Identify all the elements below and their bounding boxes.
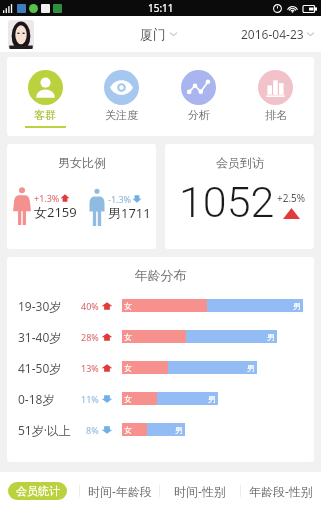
staticText: 女 [124,363,132,373]
button[interactable]: 时间-年龄段 [80,472,159,509]
button[interactable]: 分析 [160,57,237,136]
staticText: 15:11 [148,1,174,15]
staticText: 女 [124,425,132,435]
staticText: 关注度 [105,108,138,122]
staticText: 厦门 [140,26,166,42]
button[interactable]: 年龄段-性别 [241,472,321,509]
staticText: 男 [247,363,255,373]
button[interactable]: 会员统计 [0,472,79,509]
staticText: 11% [81,393,99,405]
button[interactable]: 时间-性别 [160,472,240,509]
staticText: 会员统计 [16,484,60,498]
staticText: 男1711 [108,204,151,222]
button[interactable]: 排名 [237,57,314,136]
staticText: 13% [81,362,99,374]
staticText: 排名 [265,108,287,122]
staticText: 女 [124,301,132,311]
staticText: 28% [81,331,99,343]
button[interactable]: 41-50岁 [7,352,314,383]
staticText: 31-40岁 [18,329,62,345]
staticText: 男女比例 [58,155,106,170]
staticText: 1052 [179,177,275,227]
staticText: 41-50岁 [18,360,62,376]
staticText: 8% [86,424,99,436]
staticText: 分析 [188,108,210,122]
staticText: 19-30岁 [18,298,62,314]
staticText: 0-18岁 [18,391,55,407]
staticText: 年龄分布 [7,267,314,283]
staticText: 会员到访 [216,155,264,170]
staticText: 年龄段-性别 [249,483,313,499]
button[interactable]: 客群 [7,57,83,136]
staticText: 40% [81,300,99,312]
staticText: 女2159 [34,203,77,221]
staticText: 时间-年龄段 [88,483,152,499]
staticText: +1.3% [34,192,60,204]
staticText: 客群 [34,108,56,122]
button[interactable]: 会员到访 [165,144,314,249]
staticText: 51岁·以上 [18,422,71,438]
staticText: 时间-性别 [174,483,226,499]
button[interactable]: Profile [8,20,34,49]
button[interactable]: 厦门 [140,26,177,42]
staticText: 男 [293,301,301,311]
staticText: 男 [175,425,183,435]
staticText: 女 [124,332,132,342]
staticText: +2.5% [277,191,306,205]
button[interactable]: 2016-04-23 [241,26,314,42]
button[interactable]: 19-30岁 [7,290,314,321]
button[interactable]: 男女比例 [7,144,156,249]
staticText: 女 [124,394,132,404]
button[interactable]: 关注度 [83,57,160,136]
staticText: 男 [208,394,216,404]
staticText: 2016-04-23 [241,26,304,42]
staticText: 男 [267,332,275,342]
button[interactable]: 31-40岁 [7,321,314,352]
button[interactable]: 51岁·以上 [7,414,314,445]
button[interactable]: 0-18岁 [7,383,314,414]
staticText: -1.3% [108,193,132,205]
